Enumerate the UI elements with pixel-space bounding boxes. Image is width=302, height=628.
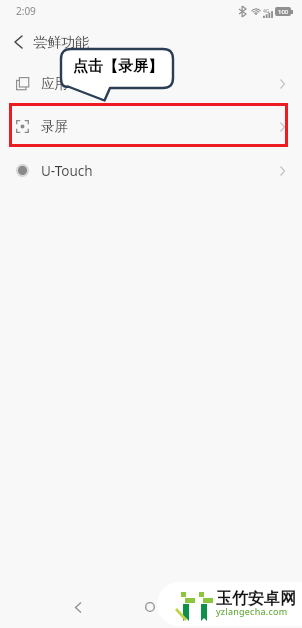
staticText: U-Touch	[41, 162, 93, 180]
button[interactable]: 录屏	[0, 105, 302, 148]
staticText: 玉竹安卓网	[216, 589, 296, 609]
staticText: yzlangecha.com	[216, 605, 288, 617]
staticText: 录屏	[41, 118, 68, 135]
staticText: 尝鲜功能	[33, 34, 89, 52]
staticText: 点击【录屏】	[63, 57, 173, 76]
button[interactable]: U-Touch	[0, 149, 302, 192]
button[interactable]: Home	[134, 591, 166, 623]
button[interactable]: Back	[62, 591, 94, 623]
staticText: 4G	[263, 8, 270, 15]
staticText: 100	[278, 8, 289, 16]
button[interactable]: Back	[2, 26, 34, 58]
button[interactable]: 应用双开	[0, 62, 302, 105]
staticText: 应用双开	[41, 75, 95, 92]
staticText: 2:09	[16, 4, 36, 18]
